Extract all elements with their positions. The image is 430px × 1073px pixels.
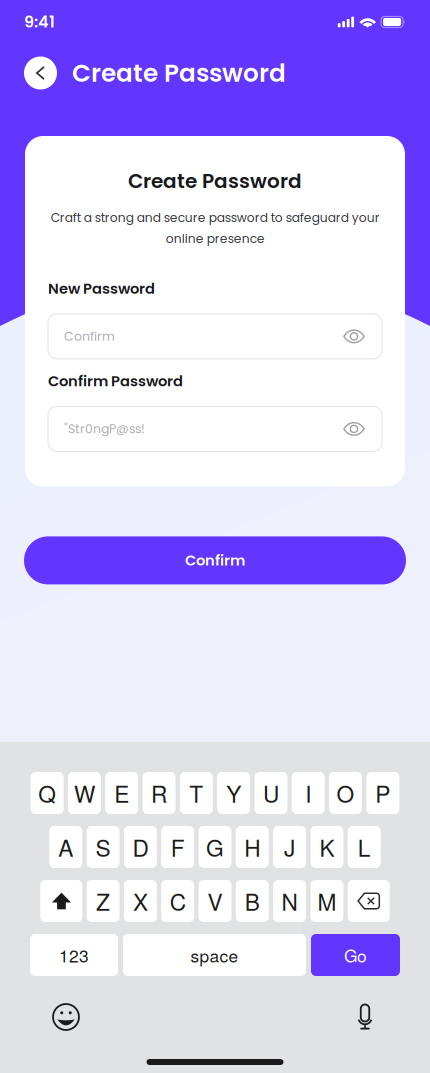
button[interactable]: J — [273, 826, 306, 868]
staticText: F — [171, 831, 185, 863]
button[interactable]: V — [198, 880, 231, 922]
staticText: Create Password — [72, 56, 286, 90]
button[interactable]: F — [161, 826, 194, 868]
button[interactable]: S — [87, 826, 120, 868]
staticText: Confirm — [64, 328, 115, 345]
staticText: J — [284, 831, 295, 863]
button[interactable]: B — [236, 880, 269, 922]
button[interactable]: E — [105, 772, 138, 814]
staticText: T — [189, 777, 203, 809]
staticText: Craft a strong and secure password to sa… — [50, 209, 379, 247]
staticText: O — [337, 777, 355, 809]
staticText: Confirm — [185, 550, 245, 571]
button[interactable]: M — [310, 880, 343, 922]
staticText: space — [190, 943, 238, 967]
button[interactable]: H — [236, 826, 269, 868]
button[interactable]: Z — [87, 880, 120, 922]
staticText: C — [170, 885, 186, 917]
button[interactable]: Show password — [343, 325, 365, 347]
staticText: Y — [226, 777, 241, 809]
staticText: K — [319, 831, 334, 863]
staticText: 9:41 — [24, 11, 55, 33]
button[interactable]: G — [198, 826, 231, 868]
staticText: Go — [344, 943, 367, 967]
staticText: U — [263, 777, 279, 809]
button[interactable]: Y — [217, 772, 250, 814]
button[interactable]: Q — [31, 772, 64, 814]
button[interactable]: L — [348, 826, 381, 868]
button[interactable]: K — [310, 826, 343, 868]
button[interactable]: R — [143, 772, 176, 814]
staticText: "Str0ngP@ss! — [64, 420, 145, 438]
button[interactable]: 123 — [30, 934, 118, 976]
button[interactable]: I — [292, 772, 325, 814]
staticText: A — [58, 831, 73, 863]
button[interactable]: X — [124, 880, 157, 922]
staticText: N — [282, 885, 298, 917]
staticText: Confirm Password — [48, 371, 183, 391]
button[interactable]: Confirm — [24, 536, 406, 584]
button[interactable]: W — [68, 772, 101, 814]
staticText: S — [96, 831, 111, 863]
button[interactable]: A — [49, 826, 82, 868]
staticText: L — [358, 831, 371, 863]
button[interactable]: O — [329, 772, 362, 814]
staticText: Z — [96, 885, 110, 917]
button[interactable]: Shift — [40, 880, 82, 922]
button[interactable]: N — [273, 880, 306, 922]
staticText: Create Password — [128, 167, 302, 195]
staticText: I — [305, 777, 311, 809]
button[interactable]: Go — [311, 934, 400, 976]
button[interactable]: Dictation — [352, 1002, 378, 1032]
staticText: R — [151, 777, 167, 809]
staticText: New Password — [48, 278, 155, 299]
button[interactable]: Delete — [348, 880, 390, 922]
button[interactable]: U — [254, 772, 287, 814]
button[interactable]: space — [123, 934, 306, 976]
button[interactable]: T — [180, 772, 213, 814]
staticText: W — [74, 777, 95, 809]
staticText: M — [317, 885, 336, 917]
staticText: Q — [38, 777, 56, 809]
staticText: P — [375, 777, 390, 809]
staticText: B — [245, 885, 260, 917]
staticText: H — [244, 831, 260, 863]
button[interactable]: Show password — [343, 418, 365, 440]
staticText: 123 — [59, 943, 89, 967]
button[interactable]: D — [124, 826, 157, 868]
staticText: G — [206, 831, 224, 863]
button[interactable]: Emoji — [51, 1002, 81, 1032]
button[interactable]: C — [161, 880, 194, 922]
staticText: E — [114, 777, 129, 809]
staticText: D — [132, 831, 148, 863]
button[interactable]: P — [366, 772, 399, 814]
staticText: V — [207, 885, 222, 917]
button[interactable]: Back — [24, 56, 57, 89]
staticText: X — [133, 885, 148, 917]
